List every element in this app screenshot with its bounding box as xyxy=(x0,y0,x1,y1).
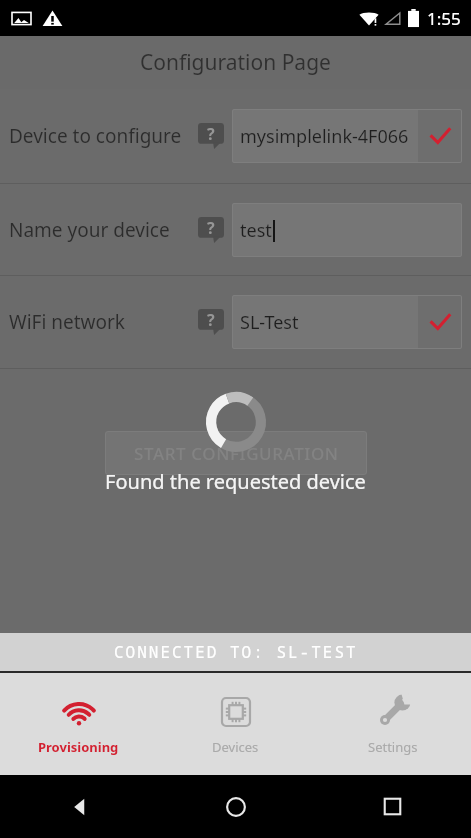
staticText: Device to configure xyxy=(9,123,198,149)
staticText: mysimplelink-4F066C xyxy=(240,124,418,149)
staticText: SL-Test xyxy=(240,310,299,335)
button[interactable]: SL-Test xyxy=(232,295,462,349)
staticText: 1:55 xyxy=(427,7,461,30)
staticText: ? xyxy=(207,123,215,144)
staticText: ? xyxy=(207,309,215,330)
button[interactable]: Back xyxy=(0,775,157,838)
button[interactable]: Devices xyxy=(157,673,314,775)
staticText: Provisioning xyxy=(38,738,119,756)
button[interactable]: Home xyxy=(157,775,314,838)
staticText: CONNECTED TO: SL-TEST xyxy=(114,641,358,663)
button[interactable]: Provisioning xyxy=(0,673,157,775)
button[interactable]: test xyxy=(232,203,462,257)
staticText: Devices xyxy=(212,738,259,756)
button[interactable]: Recent apps xyxy=(314,775,471,838)
staticText: START CONFIGURATION xyxy=(134,442,339,465)
button[interactable]: START CONFIGURATION xyxy=(105,431,367,475)
button[interactable]: mysimplelink-4F066C xyxy=(232,109,462,163)
staticText: Found the requested device xyxy=(105,468,366,495)
button[interactable]: Help xyxy=(198,123,224,149)
staticText: Settings xyxy=(368,738,418,756)
staticText: ? xyxy=(207,217,215,238)
staticText: Configuration Page xyxy=(140,48,331,77)
staticText: WiFi network xyxy=(9,309,198,335)
button[interactable]: Help xyxy=(198,309,224,335)
button[interactable]: Settings xyxy=(314,673,471,775)
staticText: test xyxy=(240,218,272,243)
button[interactable]: Help xyxy=(198,217,224,243)
staticText: Name your device xyxy=(9,217,198,243)
